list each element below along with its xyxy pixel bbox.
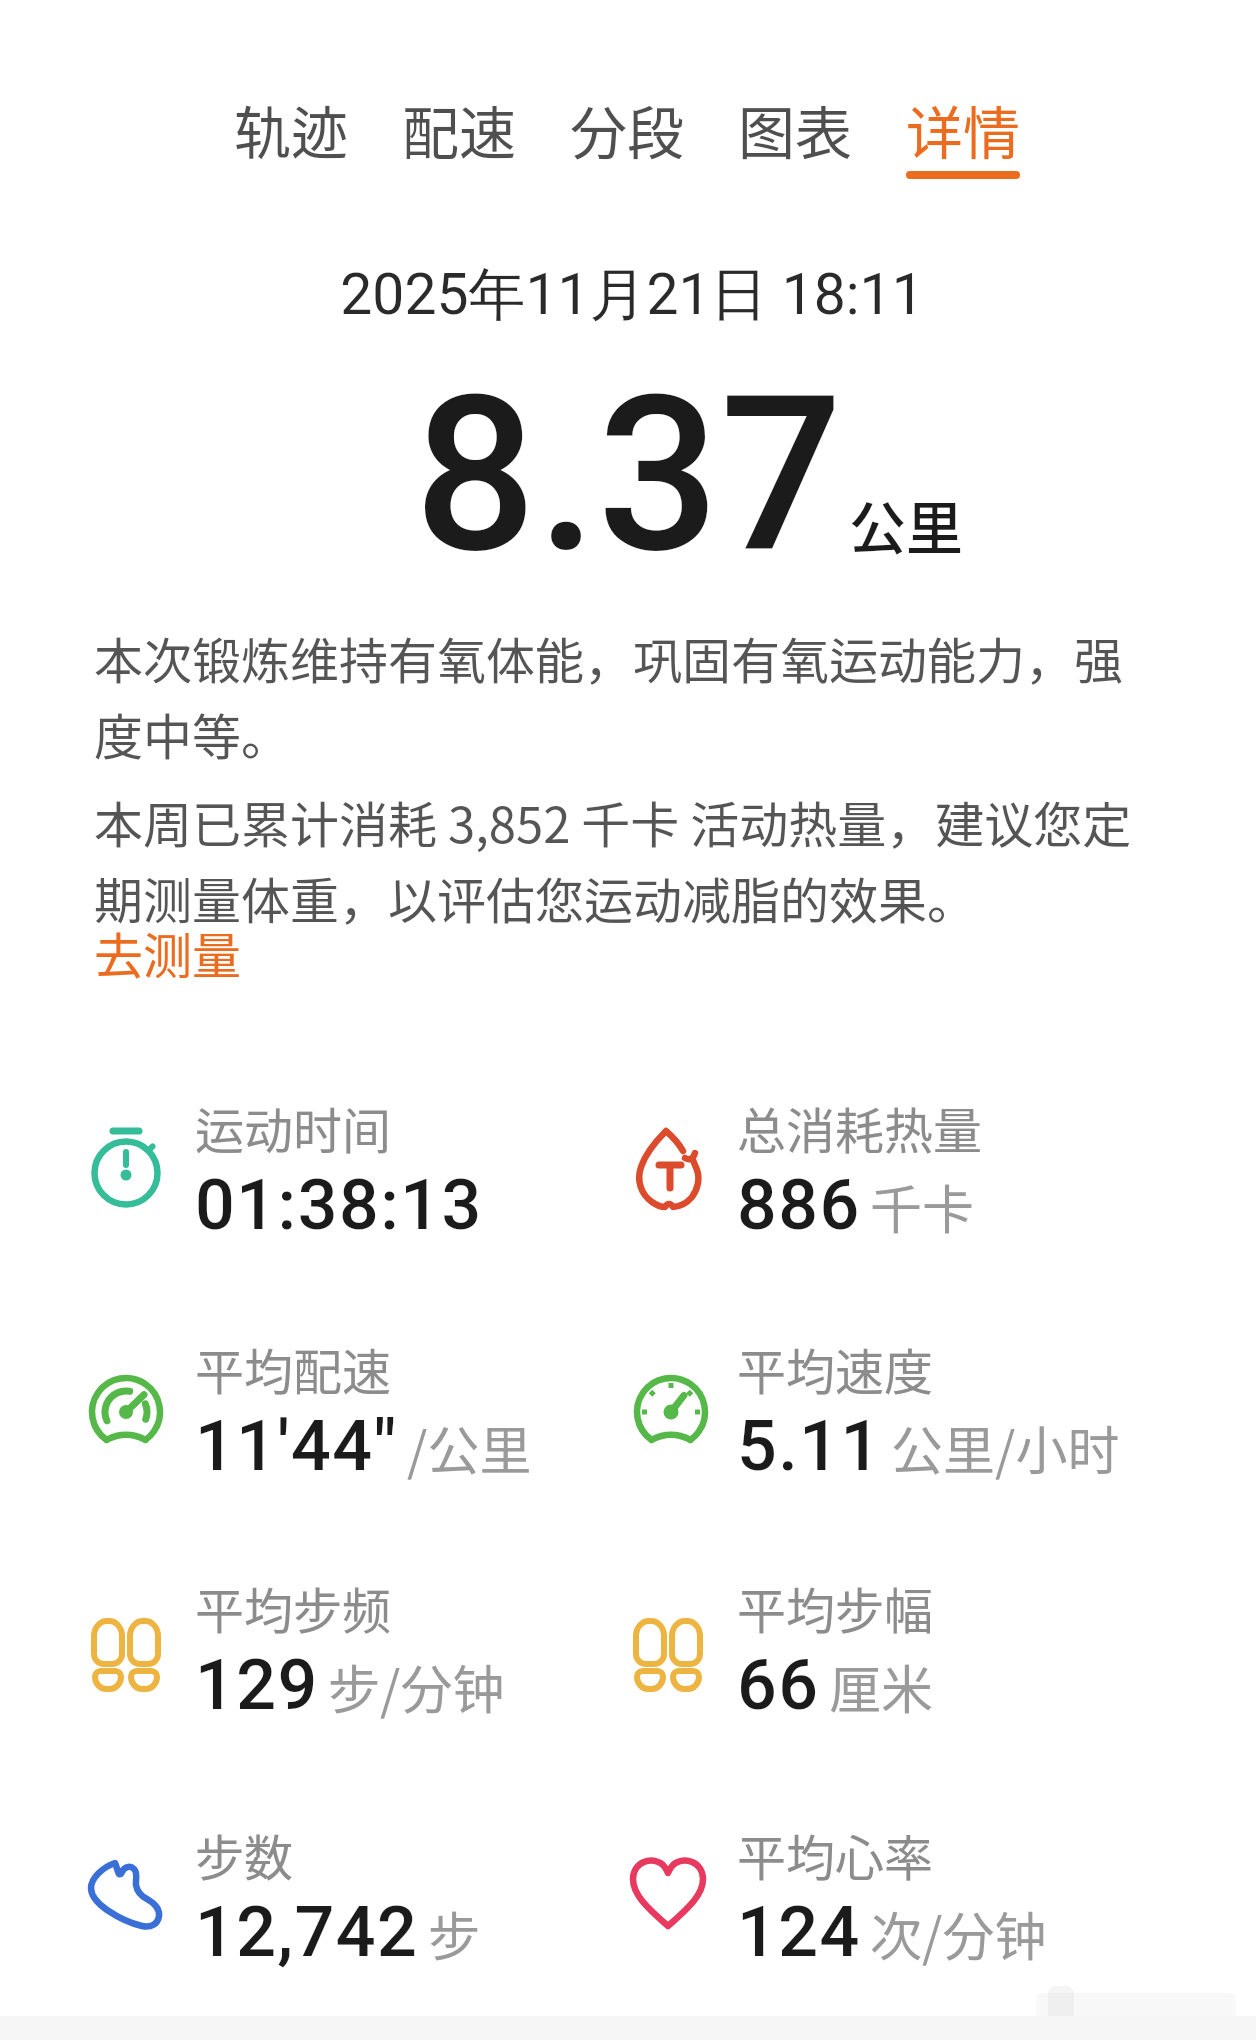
staticText: /公里 [407,1410,532,1485]
staticText: 平均步幅 [737,1572,934,1643]
staticText: 11'44" [195,1405,398,1487]
staticText: 129 [195,1644,319,1726]
staticText: 千卡 [870,1169,975,1244]
staticText: 公里/小时 [891,1410,1120,1485]
staticText: 运动时间 [195,1092,392,1163]
staticText: 2025年11月21日 18:11 [4,259,1256,331]
staticText: 平均配速 [195,1333,392,1404]
button[interactable]: 去测量 [94,917,242,988]
staticText: 01:38:13 [195,1164,483,1246]
staticText: 66 [737,1644,820,1726]
staticText: 12,742 [195,1891,419,1973]
staticText: 次/分钟 [870,1896,1047,1971]
staticText: 图表 [738,88,852,171]
staticText: 平均速度 [737,1333,934,1404]
button[interactable]: 配速 [392,88,526,171]
staticText: 厘米 [829,1649,934,1724]
staticText: 124 [737,1891,861,1973]
staticText: 8.37 [414,349,843,602]
staticText: 886 [737,1164,861,1246]
staticText: 本次锻炼维持有氧体能，巩固有氧运动能力，强 度中等。 [94,622,1124,769]
staticText: 平均心率 [737,1819,934,1890]
staticText: 配速 [402,88,516,171]
staticText: 分段 [570,88,684,171]
staticText: 本周已累计消耗 3,852 千卡 活动热量，建议您定 期测量体重，以评估您运动减… [94,786,1132,933]
button[interactable]: 图表 [728,88,862,171]
staticText: 步数 [195,1819,294,1890]
staticText: 轨迹 [234,88,348,171]
staticText: 总消耗热量 [737,1092,983,1163]
button[interactable]: 详情 [896,88,1030,171]
staticText: 平均步频 [195,1572,392,1643]
staticText: 详情 [906,88,1020,171]
staticText: 去测量 [94,917,242,988]
button[interactable]: 轨迹 [224,88,358,171]
staticText: 步/分钟 [328,1649,505,1724]
button[interactable]: 分段 [560,88,694,171]
staticText: 公里 [849,483,963,566]
staticText: 5.11 [737,1405,882,1487]
staticText: 步 [428,1896,481,1971]
